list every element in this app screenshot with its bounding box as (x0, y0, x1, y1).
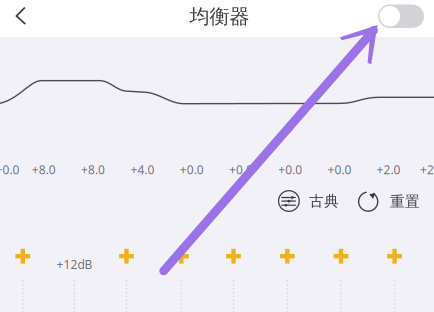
staticText: +2.0 (377, 161, 401, 177)
button[interactable]: 古典 (0, 0, 434, 312)
button[interactable]: Toggle equalizer (0, 0, 434, 312)
staticText: +0.0 (278, 161, 302, 177)
button[interactable]: 重置 (0, 0, 434, 312)
staticText: 重置 (390, 192, 420, 210)
staticText: 古典 (309, 192, 339, 210)
staticText: 均衡器 (189, 4, 249, 29)
staticText: +0.0 (180, 161, 204, 177)
staticText: +4.0 (130, 161, 154, 177)
staticText: +8.0 (81, 161, 105, 177)
staticText: +8.0 (32, 161, 56, 177)
staticText: +12dB (56, 256, 92, 272)
staticText: +0.0 (0, 161, 19, 177)
staticText: +0.0 (229, 161, 253, 177)
staticText: +0.0 (327, 161, 351, 177)
button[interactable]: Back (0, 0, 434, 312)
staticText: +2.0 (420, 161, 434, 177)
